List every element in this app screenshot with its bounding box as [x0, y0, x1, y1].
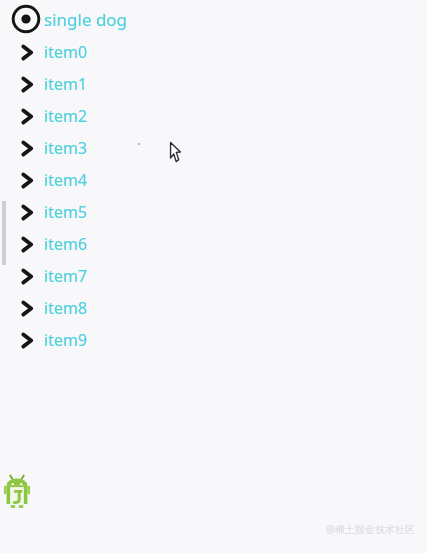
staticText: @稀土掘金技术社区 — [326, 522, 415, 536]
staticText: item9 — [44, 329, 88, 351]
staticText: single dog — [44, 8, 128, 31]
button[interactable]: item8 — [0, 292, 427, 324]
button[interactable]: item9 — [0, 324, 427, 356]
staticText: item1 — [44, 73, 88, 95]
button[interactable]: item2 — [0, 100, 427, 132]
staticText: item8 — [44, 297, 88, 319]
button[interactable]: item7 — [0, 260, 427, 292]
button[interactable]: item0 — [0, 36, 427, 68]
staticText: item6 — [44, 233, 88, 255]
button[interactable]: item3 — [0, 132, 427, 164]
other: Juejin Android mascot — [4, 474, 30, 508]
button[interactable]: item4 — [0, 164, 427, 196]
staticText: item4 — [44, 169, 88, 191]
button[interactable]: Selected radio button — [10, 3, 128, 35]
button[interactable]: item6 — [0, 228, 427, 260]
button[interactable]: item5 — [0, 196, 427, 228]
staticText: item3 — [44, 137, 88, 159]
staticText: item0 — [44, 41, 88, 63]
staticText: item5 — [44, 201, 88, 223]
staticText: item7 — [44, 265, 88, 287]
staticText: item2 — [44, 105, 88, 127]
other: Selected radio button — [10, 3, 42, 35]
button[interactable]: item1 — [0, 68, 427, 100]
